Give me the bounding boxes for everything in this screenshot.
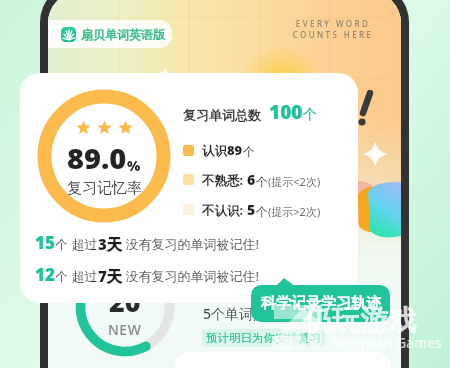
staticText: EVERY WORD COUNTS HERE [281,18,385,41]
staticText: (提示>2次) [268,204,321,219]
staticText: 89 [227,141,243,159]
staticText: 认识 [202,143,227,159]
staticText: 超过 [68,235,98,253]
staticText: 个 [256,204,268,219]
staticText: 不认识: [202,202,247,219]
staticText: 12 [35,263,55,286]
staticText: 100 [269,99,303,125]
staticText: 预计明日为你安排复习 [206,331,321,345]
staticText: 5个单词点亮 [203,304,282,323]
staticText: 15 [35,231,55,254]
staticText: 个 [55,237,68,253]
staticText: 没有复习的单词被记住! [122,235,259,253]
staticText: 89.0 [67,138,127,177]
staticText: NEW [108,320,142,339]
staticText: 个 [303,106,317,124]
button[interactable]: 科学记录学习轨迹 [251,285,390,322]
staticText: (提示<2次) [268,174,321,189]
staticText: 仍玩游戏 [303,303,417,338]
staticText: 个 [243,144,255,159]
staticText: 没有复习的单词被记住! [122,267,259,285]
staticText: 超过 [68,267,98,285]
staticText: 个 [55,269,68,285]
staticText: 20 [109,283,141,320]
staticText: 3天 [98,234,122,254]
staticText: 5 [247,200,256,219]
staticText: 6 [247,170,256,189]
staticText: % [127,156,141,175]
staticText: 科学记录学习轨迹 [261,294,381,313]
staticText: 7天 [98,266,122,286]
staticText: 个 [256,174,268,189]
staticText: 复习记忆率 [67,179,142,198]
staticText: Rengwan Games [331,333,442,352]
staticText: 扇贝单词英语版 [81,27,165,42]
staticText: 复习单词总数 [183,107,261,123]
staticText: 不熟悉: [202,172,247,189]
